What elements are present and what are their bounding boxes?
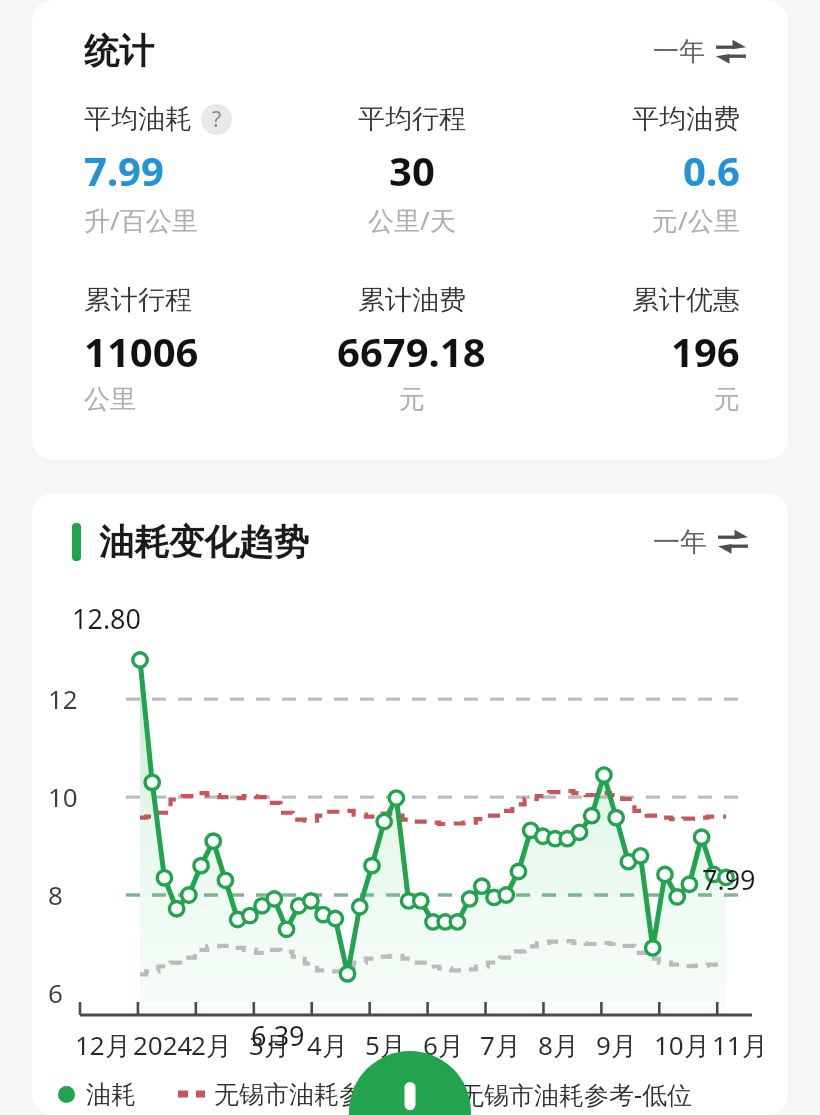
button[interactable]: 平均油耗	[84, 102, 302, 238]
staticText: 7.99	[84, 143, 164, 197]
staticText: 油耗变化趋势	[99, 520, 309, 564]
button[interactable]: Add refuel record	[349, 1051, 471, 1115]
staticText: 9月	[596, 1027, 637, 1063]
staticText: 30	[389, 143, 435, 197]
staticText: 0.6	[683, 143, 740, 197]
staticText: 8月	[538, 1027, 579, 1063]
staticText: 12	[48, 681, 78, 716]
staticText: 6月	[423, 1027, 464, 1063]
staticText: 累计行程	[84, 283, 192, 317]
staticText: 累计优惠	[632, 283, 740, 317]
staticText: 4月	[307, 1027, 348, 1063]
staticText: 7月	[480, 1027, 521, 1063]
staticText: 7.99	[702, 861, 756, 898]
staticText: 统计	[84, 29, 154, 73]
staticText: 10	[48, 779, 78, 814]
staticText: 平均油费	[632, 102, 740, 136]
button[interactable]: Change time range	[649, 31, 750, 72]
staticText: 平均行程	[358, 102, 466, 136]
staticText: 元/公里	[652, 202, 740, 238]
button[interactable]: 累计优惠	[521, 283, 740, 416]
staticText: 累计油费	[358, 283, 466, 317]
staticText: 油耗	[86, 1079, 136, 1110]
staticText: 12.80	[72, 600, 142, 637]
button[interactable]: 累计行程	[84, 283, 302, 416]
staticText: 10月	[654, 1027, 710, 1063]
staticText: 196	[671, 324, 740, 378]
staticText: 2024	[133, 1027, 193, 1062]
staticText: 6.39	[251, 1017, 305, 1054]
button[interactable]: 平均行程	[302, 102, 521, 238]
staticText: ?	[212, 105, 222, 134]
staticText: 8	[48, 877, 63, 912]
staticText: 无锡市油耗参考	[214, 1079, 389, 1110]
staticText: 公里/天	[368, 202, 456, 238]
button[interactable]: 累计油费	[302, 283, 521, 416]
other: Help	[201, 104, 232, 135]
staticText: 2月	[191, 1027, 232, 1063]
staticText: 6679.18	[337, 324, 486, 378]
staticText: 元	[714, 383, 740, 416]
staticText: 一年	[653, 525, 707, 559]
button[interactable]: Change time range	[649, 521, 752, 563]
staticText: 升/百公里	[84, 202, 198, 238]
staticText: 无锡市油耗参考-低位	[459, 1077, 693, 1111]
staticText: 3月	[249, 1027, 290, 1063]
staticText: 一年	[653, 35, 705, 68]
staticText: 11006	[84, 324, 199, 378]
staticText: 5月	[365, 1027, 406, 1063]
button[interactable]: 平均油费	[521, 102, 740, 238]
staticText: 平均油耗	[84, 102, 192, 136]
staticText: 6	[48, 975, 63, 1010]
staticText: 公里	[84, 383, 136, 416]
staticText: 12月	[75, 1027, 131, 1063]
staticText: 11月	[712, 1027, 768, 1063]
staticText: 元	[399, 383, 425, 416]
